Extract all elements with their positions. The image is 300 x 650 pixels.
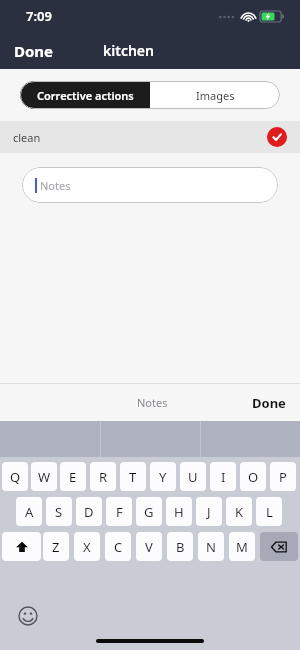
button[interactable]: F	[106, 497, 132, 526]
button[interactable]: Images	[150, 81, 280, 109]
staticText: G	[144, 503, 154, 521]
staticText: X	[83, 538, 91, 556]
button[interactable]: Backspace	[260, 532, 298, 561]
button[interactable]: Corrective actions	[20, 81, 150, 109]
button[interactable]: Y	[150, 462, 176, 491]
staticText: S	[55, 503, 63, 521]
button[interactable]: E	[60, 462, 86, 491]
button[interactable]: L	[256, 497, 282, 526]
button[interactable]: C	[105, 532, 131, 561]
staticText: clean	[13, 130, 41, 145]
button[interactable]: J	[196, 497, 222, 526]
staticText: V	[145, 538, 153, 556]
staticText: kitchen	[103, 41, 154, 60]
staticText: O	[248, 468, 259, 486]
staticText: N	[206, 538, 216, 556]
button[interactable]: Notes	[22, 167, 278, 203]
button[interactable]: R	[90, 462, 116, 491]
button[interactable]: M	[229, 532, 255, 561]
staticText: R	[99, 468, 108, 486]
staticText: Corrective actions	[37, 88, 134, 103]
button[interactable]: Z	[43, 532, 69, 561]
staticText: C	[114, 538, 123, 556]
button[interactable]: Completed	[267, 127, 287, 147]
staticText: M	[236, 538, 248, 556]
button[interactable]: G	[136, 497, 162, 526]
staticText: E	[69, 468, 77, 486]
staticText: Done	[14, 41, 54, 61]
staticText: U	[188, 468, 198, 486]
button[interactable]: K	[226, 497, 252, 526]
staticText: D	[84, 503, 94, 521]
button[interactable]: P	[270, 462, 296, 491]
button[interactable]: H	[166, 497, 192, 526]
button[interactable]: T	[120, 462, 146, 491]
button[interactable]: U	[180, 462, 206, 491]
staticText: Notes	[40, 178, 71, 193]
staticText: Q	[10, 468, 21, 486]
staticText: B	[176, 538, 185, 556]
button[interactable]: clean	[0, 121, 300, 153]
button[interactable]: B	[167, 532, 193, 561]
button[interactable]: I	[210, 462, 236, 491]
staticText: P	[279, 468, 287, 486]
button[interactable]: D	[76, 497, 102, 526]
button[interactable]: Done	[238, 387, 300, 419]
button[interactable]: W	[31, 462, 57, 491]
button[interactable]: O	[240, 462, 266, 491]
staticText: 7:09	[26, 7, 52, 25]
button[interactable]: Emoji	[18, 606, 38, 626]
button[interactable]: A	[16, 497, 42, 526]
staticText: T	[129, 468, 137, 486]
button[interactable]: N	[198, 532, 224, 561]
staticText: K	[235, 503, 244, 521]
button[interactable]: Q	[2, 462, 28, 491]
staticText: H	[174, 503, 184, 521]
button[interactable]: V	[136, 532, 162, 561]
staticText: Images	[196, 88, 235, 103]
button[interactable]: X	[74, 532, 100, 561]
button[interactable]: Done	[0, 35, 68, 67]
staticText: W	[38, 468, 51, 486]
staticText: L	[266, 503, 273, 521]
staticText: A	[25, 503, 34, 521]
button[interactable]: Shift	[2, 532, 41, 561]
button[interactable]: S	[46, 497, 72, 526]
staticText: Z	[52, 538, 60, 556]
staticText: Notes	[137, 395, 168, 410]
staticText: I	[221, 468, 226, 486]
staticText: F	[116, 503, 123, 521]
staticText: J	[207, 503, 211, 521]
staticText: Done	[252, 394, 286, 412]
staticText: Y	[159, 468, 167, 486]
